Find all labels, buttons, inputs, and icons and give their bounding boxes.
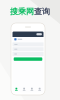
button[interactable]: Orders — [28, 88, 36, 91]
staticText: 搜乘网 — [10, 7, 34, 16]
button[interactable]: Me — [36, 88, 44, 91]
staticText: 查询 — [34, 7, 50, 16]
button[interactable]: Home — [12, 88, 20, 91]
button[interactable]: Search — [20, 88, 28, 91]
